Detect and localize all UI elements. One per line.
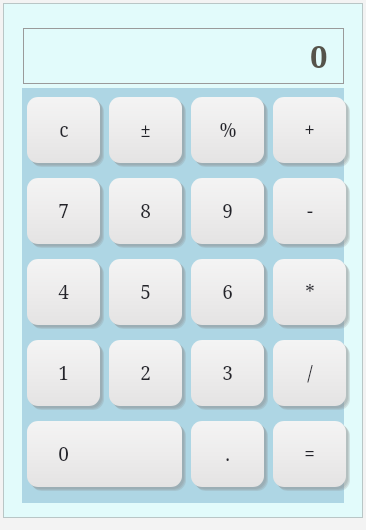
staticText: 9 <box>222 198 233 224</box>
staticText: % <box>219 117 237 143</box>
staticText: = <box>304 441 315 467</box>
staticText: 0 <box>310 35 328 77</box>
button[interactable]: 6 <box>191 259 264 325</box>
button[interactable]: * <box>273 259 346 325</box>
staticText: * <box>305 279 315 305</box>
staticText: 0 <box>58 441 69 467</box>
staticText: 1 <box>58 360 69 386</box>
staticText: ± <box>140 117 151 143</box>
staticText: c <box>59 117 69 143</box>
staticText: 8 <box>140 198 151 224</box>
button[interactable]: ± <box>109 97 182 163</box>
staticText: 4 <box>58 279 69 305</box>
button[interactable]: 2 <box>109 340 182 406</box>
staticText: 6 <box>222 279 233 305</box>
staticText: 5 <box>140 279 151 305</box>
button[interactable]: - <box>273 178 346 244</box>
button[interactable]: Calculator display showing 0 <box>23 28 344 84</box>
staticText: / <box>307 360 313 386</box>
staticText: 2 <box>140 360 151 386</box>
button[interactable]: 8 <box>109 178 182 244</box>
button[interactable]: 7 <box>27 178 100 244</box>
button[interactable]: % <box>191 97 264 163</box>
staticText: . <box>225 441 230 467</box>
button[interactable]: / <box>273 340 346 406</box>
button[interactable]: 4 <box>27 259 100 325</box>
staticText: 3 <box>222 360 233 386</box>
button[interactable]: 3 <box>191 340 264 406</box>
staticText: 7 <box>58 198 69 224</box>
button[interactable]: 0 <box>27 421 182 487</box>
button[interactable]: 1 <box>27 340 100 406</box>
button[interactable]: . <box>191 421 264 487</box>
button[interactable]: 5 <box>109 259 182 325</box>
button[interactable]: + <box>273 97 346 163</box>
button[interactable]: = <box>273 421 346 487</box>
button[interactable]: c <box>27 97 100 163</box>
staticText: - <box>307 198 313 224</box>
staticText: + <box>304 117 315 143</box>
button[interactable]: 9 <box>191 178 264 244</box>
